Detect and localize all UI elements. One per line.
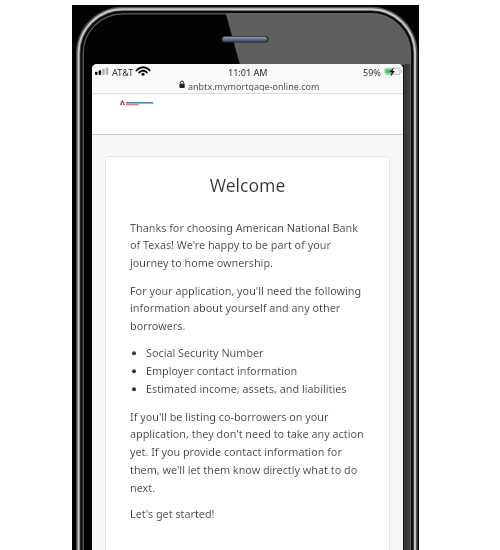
- staticText: Thanks for choosing American National Ba…: [130, 220, 366, 270]
- staticText: Let's get started!: [130, 506, 366, 521]
- staticText: 59%: [363, 66, 381, 78]
- staticText: anbtx.mymortgage-online.com: [188, 80, 320, 91]
- staticText: 11:01 AM: [228, 66, 268, 78]
- staticText: Employer contact information: [146, 363, 356, 378]
- staticText: AT&T: [112, 66, 134, 78]
- staticText: Welcome: [105, 173, 390, 197]
- staticText: Estimated income, assets, and liabilitie…: [146, 381, 356, 396]
- staticText: For your application, you'll need the fo…: [130, 283, 366, 333]
- staticText: Social Security Number: [146, 345, 356, 360]
- staticText: If you'll be listing co-borrowers on you…: [130, 409, 366, 495]
